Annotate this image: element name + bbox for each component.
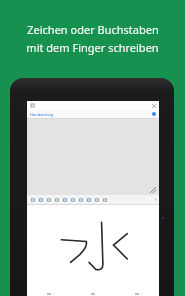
other: Resize — [150, 187, 156, 193]
button[interactable]: Tool 6 — [77, 195, 85, 204]
button[interactable]: Tool 8 — [93, 195, 101, 204]
other: Close — [152, 104, 156, 108]
button[interactable]: Tool 2 — [45, 195, 53, 204]
button[interactable]: Tool 7 — [85, 195, 93, 204]
button[interactable]: Tool 3 — [53, 195, 61, 204]
button[interactable]: Nav 0 — [27, 292, 71, 296]
other: App icon — [152, 112, 156, 116]
other: Menu — [30, 103, 35, 108]
button[interactable]: Tool 5 — [69, 195, 77, 204]
staticText: mit dem Finger schreiben — [26, 40, 159, 55]
button[interactable]: Handwriting area — [27, 205, 159, 292]
button[interactable]: Nav 2 — [115, 292, 159, 296]
staticText: Handwriting — [30, 112, 54, 117]
button[interactable]: Tool 0 — [29, 195, 37, 204]
button[interactable]: Tool 1 — [37, 195, 45, 204]
button[interactable]: Nav 1 — [71, 292, 115, 296]
button[interactable]: Handwriting — [27, 110, 159, 118]
staticText: Zeichen oder Buchstaben — [27, 22, 159, 37]
button[interactable]: Menu — [27, 101, 159, 110]
button[interactable]: Tool 9 — [101, 195, 109, 204]
other: More options — [154, 198, 157, 201]
button[interactable]: Tool 4 — [61, 195, 69, 204]
